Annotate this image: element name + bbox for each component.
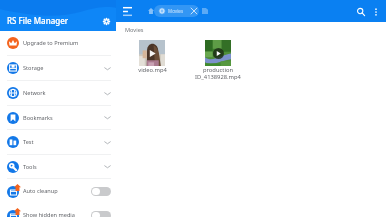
staticText: production ID_4138928.mp4 [195, 66, 241, 81]
button[interactable]: Upgrade to Premium [0, 31, 116, 55]
button[interactable]: production ID_4138928.mp4 [185, 40, 251, 81]
staticText: Network [23, 89, 46, 97]
button[interactable]: Bookmarks [0, 106, 116, 129]
staticText: Auto cleanup [23, 187, 58, 195]
staticText: Show hidden media [23, 211, 75, 217]
staticText: Tools [23, 163, 37, 171]
button[interactable]: Search [353, 4, 368, 19]
button[interactable]: Home [146, 6, 156, 16]
button[interactable]: Settings [99, 14, 113, 28]
staticText: Movies [168, 8, 184, 14]
button[interactable]: Show hidden media [91, 211, 111, 217]
button[interactable]: Auto cleanup [91, 187, 111, 196]
staticText: Bookmarks [23, 114, 53, 122]
staticText: RS File Manager [7, 15, 69, 26]
button[interactable]: More options [368, 4, 383, 19]
button[interactable]: Storage [0, 56, 116, 80]
button[interactable]: Movies [154, 5, 199, 17]
button[interactable]: Network [0, 81, 116, 105]
button[interactable]: video.mp4 [119, 40, 185, 74]
button[interactable]: Show hidden media [0, 203, 116, 217]
button[interactable]: Auto cleanup [0, 179, 116, 203]
staticText: Upgrade to Premium [23, 39, 79, 47]
staticText: Storage [23, 64, 44, 72]
staticText: Test [23, 138, 34, 146]
staticText: Movies [125, 26, 144, 34]
button[interactable]: Test [0, 130, 116, 154]
button[interactable]: Menu [119, 3, 135, 19]
button[interactable]: Tools [0, 155, 116, 178]
staticText: video.mp4 [138, 66, 167, 74]
